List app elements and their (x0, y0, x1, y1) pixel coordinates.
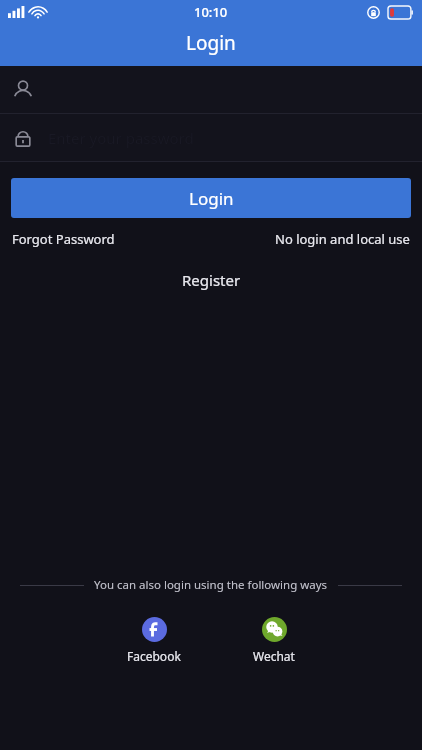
staticText: Login (186, 30, 236, 56)
staticText: You can also login using the following w… (94, 577, 328, 593)
staticText: Forgot Password (12, 230, 115, 248)
other: Username (12, 79, 34, 101)
staticText: Login (189, 187, 234, 210)
button[interactable]: Username (0, 66, 422, 113)
button[interactable]: Password (0, 114, 422, 161)
other: Login with Wechat (262, 617, 287, 642)
button[interactable]: Login with Facebook (119, 615, 189, 666)
other: Password (12, 127, 34, 149)
staticText: Facebook (127, 648, 181, 664)
staticText: No login and local use (275, 230, 410, 248)
button[interactable]: Forgot Password (12, 230, 115, 248)
other: Login with Facebook (142, 617, 167, 642)
button[interactable]: No login and local use (275, 230, 410, 248)
staticText: 10:10 (194, 3, 228, 21)
button[interactable]: Login with Wechat (245, 615, 303, 666)
staticText: Register (182, 270, 241, 290)
staticText: Wechat (253, 648, 295, 664)
button[interactable]: Login (11, 178, 411, 218)
button[interactable]: Register (166, 268, 257, 292)
